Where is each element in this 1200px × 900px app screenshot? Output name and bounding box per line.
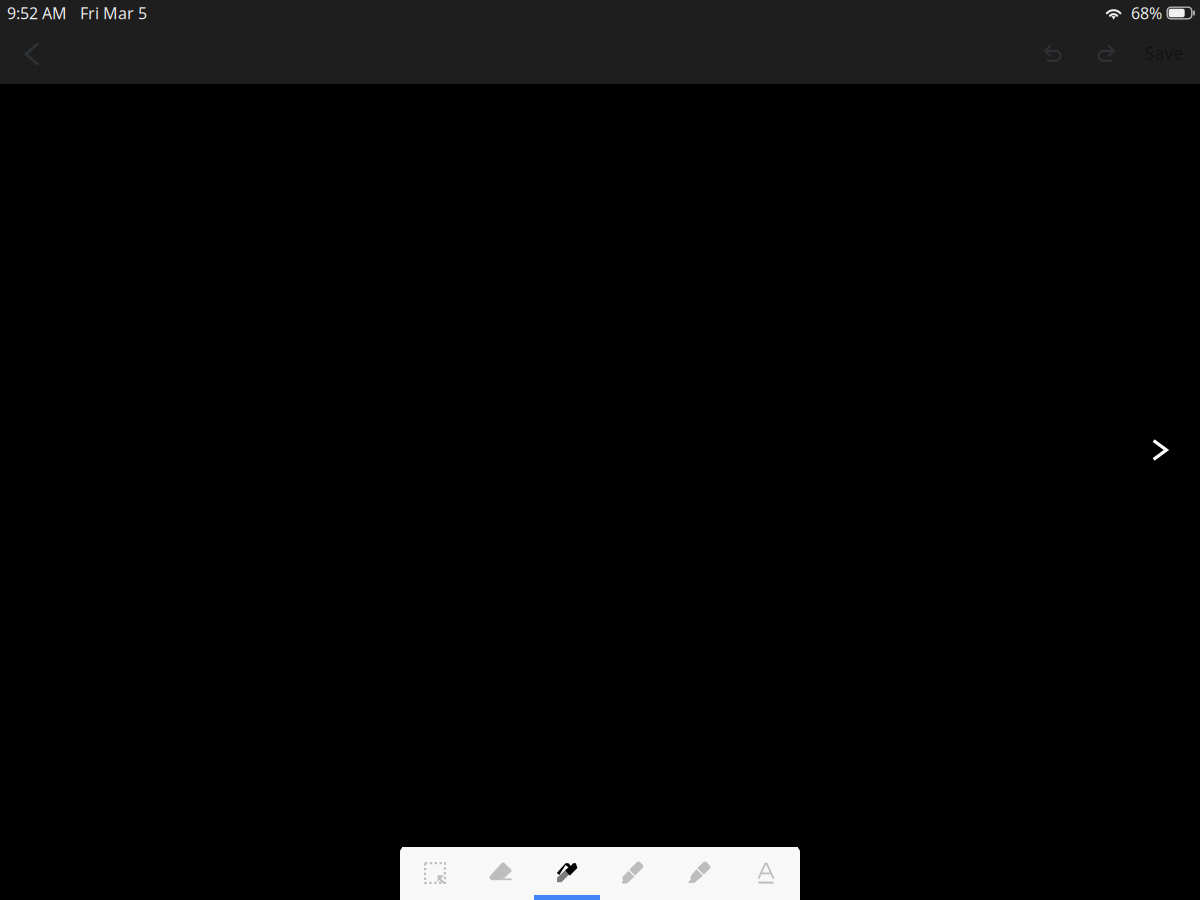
button[interactable]: Redo <box>1084 31 1128 75</box>
staticText: 68% <box>1131 2 1162 24</box>
staticText: 9:52 AM <box>7 2 67 24</box>
button[interactable]: Text <box>732 847 798 900</box>
button[interactable]: Pencil <box>600 847 666 900</box>
button[interactable]: Pen <box>534 847 600 900</box>
button[interactable]: Undo <box>1031 31 1075 75</box>
staticText: Save <box>1144 41 1183 64</box>
button[interactable]: Next page <box>1138 428 1182 472</box>
button[interactable]: Highlighter <box>666 847 732 900</box>
button[interactable]: Eraser <box>468 847 534 900</box>
button[interactable]: Back <box>10 32 54 76</box>
staticText: Fri Mar 5 <box>80 2 147 24</box>
button[interactable]: Select <box>402 847 468 900</box>
